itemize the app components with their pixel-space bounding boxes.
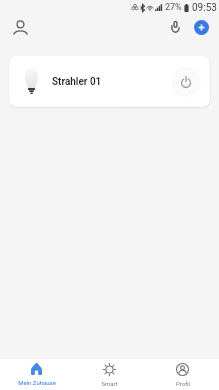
staticText: Mein Zuhause (18, 379, 56, 386)
staticText: Strahler 01 (52, 76, 102, 88)
button[interactable]: Mein Zuhause (0, 359, 73, 390)
staticText: Profil (176, 380, 190, 387)
staticText: Smart (101, 380, 118, 387)
button[interactable]: Account (8, 16, 32, 40)
button[interactable]: Profil (146, 359, 219, 390)
button[interactable]: Smart (73, 359, 146, 390)
staticText: 27% (165, 2, 182, 13)
button[interactable]: Add device (194, 20, 209, 35)
button[interactable]: Voice search (163, 15, 187, 39)
staticText: 09:53 (192, 2, 217, 14)
button[interactable]: Strahler 01 (9, 56, 210, 107)
button[interactable]: Power (171, 67, 201, 97)
